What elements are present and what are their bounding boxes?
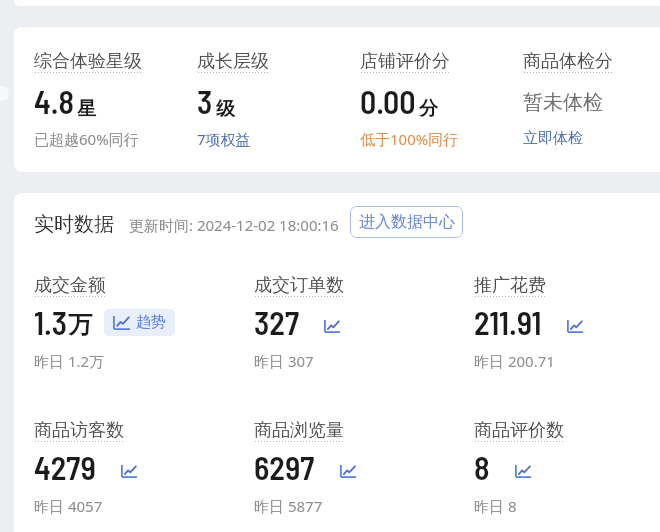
staticText: 昨日 307	[254, 351, 314, 371]
staticText: 店铺评价分	[360, 50, 450, 73]
staticText: 6297	[254, 448, 315, 486]
staticText: 进入数据中心	[359, 212, 455, 232]
button[interactable]: 成交订单数	[254, 274, 454, 379]
staticText: 1.3	[34, 303, 68, 341]
staticText: 3	[197, 82, 213, 120]
staticText: 推广花费	[474, 274, 546, 297]
staticText: 低于100%同行	[360, 129, 459, 149]
staticText: 分	[419, 97, 438, 121]
staticText: 4.8	[34, 82, 74, 120]
staticText: 商品浏览量	[254, 419, 344, 442]
button[interactable]: 店铺评价分	[360, 50, 510, 148]
button[interactable]: 综合体验星级	[34, 50, 184, 148]
staticText: 暂未体检	[523, 90, 603, 115]
staticText: 昨日 200.71	[474, 351, 555, 371]
staticText: 8	[474, 448, 490, 486]
staticText: 成交金额	[34, 274, 106, 297]
button[interactable]: 成交金额	[34, 274, 234, 379]
button[interactable]: 趋势	[319, 313, 345, 339]
button[interactable]: 趋势	[562, 313, 588, 339]
staticText: 更新时间: 2024-12-02 18:00:16	[129, 215, 339, 235]
button[interactable]: 商品浏览量	[254, 419, 454, 524]
staticText: 综合体验星级	[34, 50, 142, 73]
staticText: 327	[254, 303, 299, 341]
button[interactable]: 商品评价数	[474, 419, 660, 524]
staticText: 立即体检	[523, 129, 583, 148]
staticText: 成交订单数	[254, 274, 344, 297]
staticText: 昨日 8	[474, 496, 517, 516]
button[interactable]: 商品体检分	[523, 50, 660, 148]
button[interactable]: 成长层级	[197, 50, 347, 148]
staticText: 4279	[34, 448, 96, 486]
staticText: 趋势	[136, 313, 166, 332]
staticText: 商品评价数	[474, 419, 564, 442]
staticText: 211.91	[474, 303, 542, 341]
staticText: 实时数据	[34, 212, 114, 237]
staticText: 万	[68, 310, 92, 340]
staticText: 成长层级	[197, 50, 269, 73]
staticText: 商品访客数	[34, 419, 124, 442]
button[interactable]: 商品访客数	[34, 419, 234, 524]
staticText: 昨日 5877	[254, 496, 323, 516]
staticText: 0.00	[360, 82, 416, 120]
staticText: 7项权益	[197, 129, 251, 149]
staticText: 已超越60%同行	[34, 129, 139, 149]
staticText: 级	[216, 97, 235, 121]
button[interactable]: 趋势	[116, 458, 142, 484]
button[interactable]: 趋势	[335, 458, 361, 484]
staticText: 昨日 4057	[34, 496, 103, 516]
staticText: 商品体检分	[523, 50, 613, 73]
button[interactable]: 趋势	[104, 309, 175, 336]
staticText: 昨日 1.2万	[34, 351, 105, 371]
button[interactable]: 趋势	[510, 458, 536, 484]
staticText: 星	[77, 97, 96, 121]
button[interactable]: 进入数据中心	[350, 206, 463, 238]
button[interactable]: 推广花费	[474, 274, 660, 379]
